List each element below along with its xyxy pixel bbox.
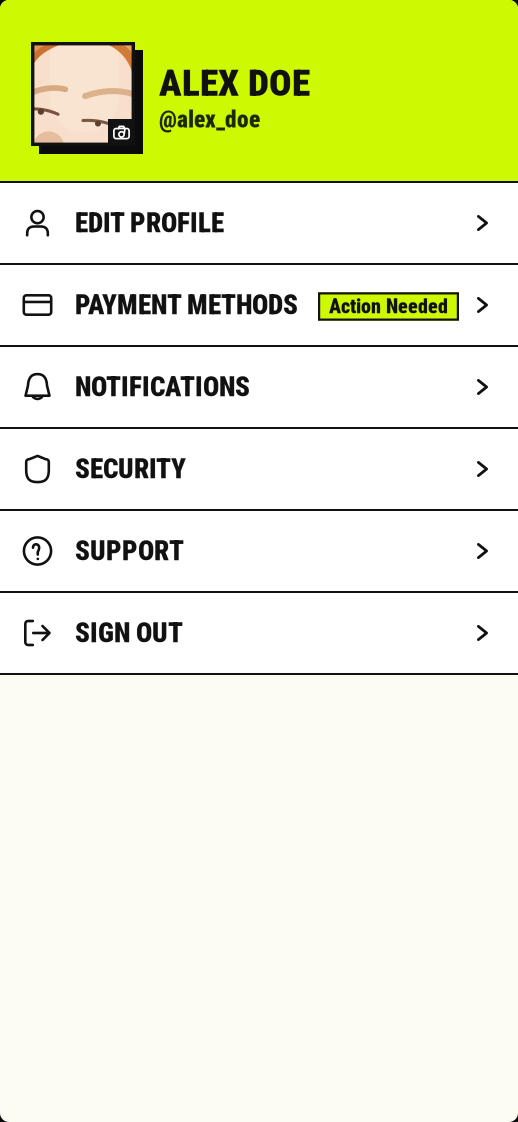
staticText: SUPPORT <box>75 535 184 567</box>
button[interactable]: SIGN OUT <box>0 593 518 673</box>
staticText: PAYMENT METHODS <box>75 289 298 321</box>
button[interactable]: SECURITY <box>0 429 518 509</box>
button[interactable]: Change profile photo <box>108 119 135 146</box>
staticText: NOTIFICATIONS <box>75 371 250 403</box>
staticText: EDIT PROFILE <box>75 207 224 239</box>
staticText: SECURITY <box>75 453 186 485</box>
staticText: @alex_doe <box>159 106 260 133</box>
staticText: ALEX DOE <box>159 61 310 105</box>
staticText: SIGN OUT <box>75 617 183 649</box>
button[interactable]: PAYMENT METHODS <box>0 265 518 345</box>
button[interactable]: SUPPORT <box>0 511 518 591</box>
button[interactable]: NOTIFICATIONS <box>0 347 518 427</box>
staticText: Action Needed <box>329 295 448 318</box>
button[interactable]: EDIT PROFILE <box>0 183 518 263</box>
